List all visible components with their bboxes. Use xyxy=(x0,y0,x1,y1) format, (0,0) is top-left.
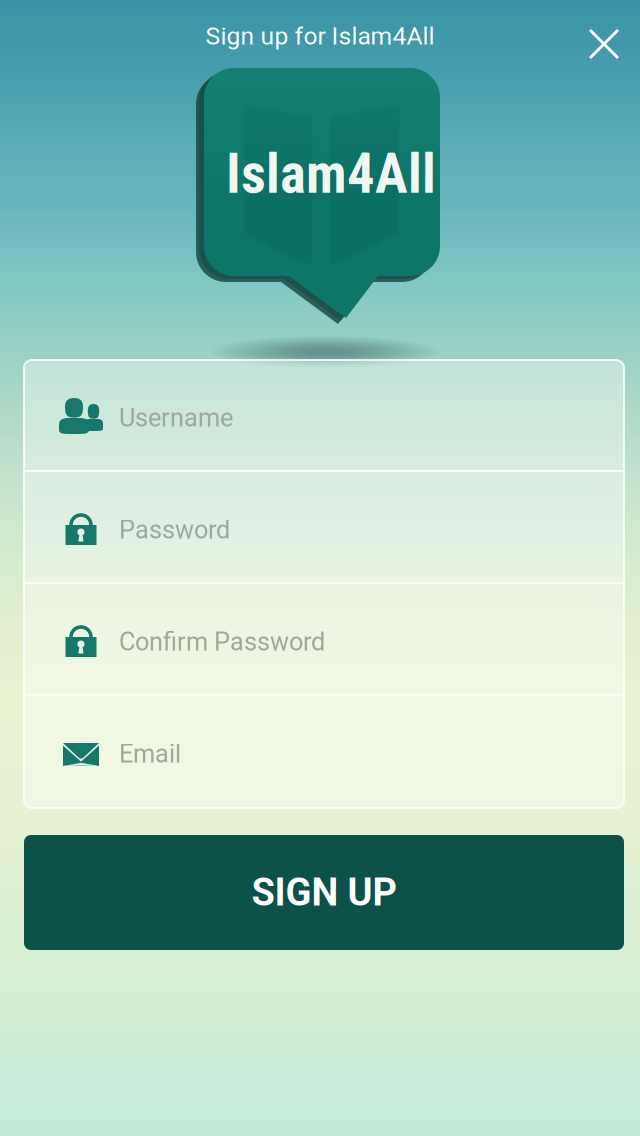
button[interactable]: SIGN UP xyxy=(24,835,624,950)
staticText: Password xyxy=(119,515,230,545)
button[interactable]: Username xyxy=(24,360,624,472)
staticText: Islam4All xyxy=(226,142,436,206)
staticText: Confirm Password xyxy=(119,627,325,657)
staticText: SIGN UP xyxy=(251,870,396,915)
staticText: Username xyxy=(119,403,233,433)
button[interactable]: Password xyxy=(24,472,624,584)
button[interactable]: Email xyxy=(24,696,624,808)
button[interactable]: Close xyxy=(568,8,640,80)
staticText: Sign up for Islam4All xyxy=(205,21,434,50)
staticText: Email xyxy=(119,739,181,769)
button[interactable]: Confirm Password xyxy=(24,584,624,696)
